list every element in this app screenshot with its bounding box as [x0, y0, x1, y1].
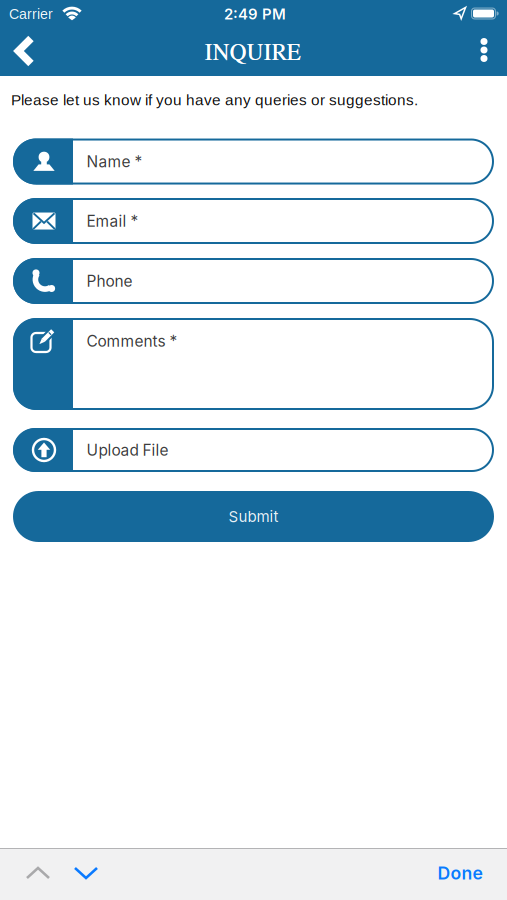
staticText: Upload File [86, 441, 168, 459]
button[interactable]: Phone [13, 258, 494, 304]
button[interactable]: Done [437, 862, 482, 884]
staticText: Phone [86, 272, 132, 290]
staticText: Comments * [86, 332, 177, 350]
staticText: Please let us know if you have any queri… [11, 91, 418, 108]
staticText: Submit [228, 507, 278, 526]
staticText: Email * [86, 212, 138, 230]
staticText: Carrier [9, 6, 53, 22]
button[interactable]: Name * [13, 138, 494, 184]
staticText: Name * [86, 152, 142, 171]
button[interactable]: More options [469, 33, 499, 67]
staticText: 2:49 PM [224, 5, 286, 23]
button[interactable]: Back [10, 36, 40, 66]
button[interactable]: Submit [13, 491, 494, 542]
staticText: INQUIRE [204, 36, 300, 66]
button[interactable]: Upload File [13, 428, 494, 472]
button[interactable]: Previous field [23, 858, 53, 888]
button[interactable]: Comments * [13, 318, 494, 410]
button[interactable]: Next field [71, 858, 101, 888]
staticText: INQUIRE [205, 36, 301, 66]
button[interactable]: Email * [13, 198, 494, 244]
staticText: Done [437, 862, 482, 884]
